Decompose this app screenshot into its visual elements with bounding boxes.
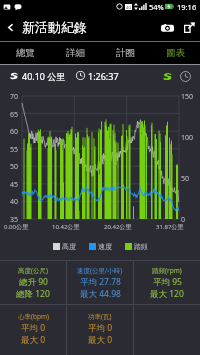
staticText: 平均 0	[21, 322, 46, 334]
button[interactable]: 詳細	[50, 42, 100, 64]
staticText: 高度	[62, 242, 76, 251]
staticText: 60	[10, 127, 19, 137]
staticText: 最大 0	[88, 334, 113, 346]
button[interactable]: 高度(公尺)	[0, 261, 66, 304]
staticText: 踏頻(rpm)	[152, 266, 182, 275]
button[interactable]: Activity type	[160, 69, 174, 83]
button[interactable]: 踏頻	[125, 242, 148, 251]
button[interactable]: Camera	[156, 13, 178, 41]
staticText: 計圈	[116, 47, 135, 59]
button[interactable]: 計圈	[100, 42, 150, 64]
staticText: 平均 27.78	[80, 276, 121, 288]
staticText: 50	[10, 162, 19, 172]
staticText: 最大 120	[150, 288, 184, 300]
staticText: 1:26:37	[88, 70, 119, 82]
staticText: 65	[10, 110, 19, 120]
staticText: 詳細	[66, 47, 85, 59]
button[interactable]: 速度	[89, 242, 112, 251]
button[interactable]: Back	[0, 13, 20, 41]
staticText: 圖表	[166, 47, 185, 59]
staticText: 35	[10, 215, 19, 225]
staticText: 150	[181, 92, 194, 102]
staticText: 心率(bpm)	[18, 312, 49, 321]
staticText: 55	[10, 145, 19, 155]
staticText: 0.00公里	[4, 223, 28, 231]
staticText: 踏頻	[134, 242, 148, 251]
button[interactable]: 總覽	[0, 42, 50, 64]
staticText: 平均 95	[153, 276, 182, 288]
staticText: 速度(公里/小時)	[77, 266, 123, 275]
staticText: 速度	[98, 242, 112, 251]
staticText: 31.87公里	[156, 223, 184, 231]
staticText: 總降 120	[16, 288, 50, 300]
staticText: 20.42公里	[104, 223, 132, 231]
staticText: 50	[181, 174, 190, 184]
staticText: 總覽	[16, 47, 35, 59]
staticText: 40	[10, 197, 19, 207]
staticText: 10.42公里	[52, 223, 80, 231]
staticText: 19:16	[177, 2, 197, 12]
button[interactable]: 功率(瓦)	[67, 305, 133, 355]
button[interactable]: 心率(bpm)	[0, 305, 66, 355]
button[interactable]: Share	[178, 13, 200, 41]
button[interactable]: Time	[178, 69, 192, 83]
staticText: 45	[10, 180, 19, 190]
staticText: 最大 0	[21, 334, 46, 346]
button[interactable]: 圖表	[150, 42, 200, 64]
staticText: 54%	[149, 2, 164, 12]
staticText: 70	[10, 92, 19, 102]
staticText: 平均 0	[88, 322, 113, 334]
staticText: 功率(瓦)	[88, 312, 112, 321]
staticText: 最大 44.98	[80, 288, 121, 300]
staticText: 4G	[126, 5, 132, 10]
button[interactable]: 踏頻(rpm)	[134, 261, 200, 304]
staticText: 總升 90	[19, 276, 48, 288]
button[interactable]: 速度(公里/小時)	[67, 261, 133, 304]
staticText: 0	[181, 215, 186, 225]
staticText: 100	[181, 133, 194, 143]
staticText: 新活動紀錄	[22, 19, 87, 35]
button[interactable]: 高度	[53, 242, 76, 251]
staticText: 40.10 公里	[22, 70, 66, 82]
staticText: 高度(公尺)	[18, 266, 48, 275]
